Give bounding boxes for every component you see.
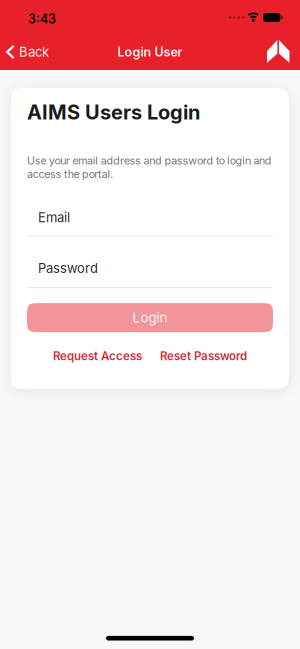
button[interactable]: AIMS Home [266,38,300,61]
staticText: Request Access [53,349,142,363]
staticText: Login User [117,44,182,59]
button[interactable]: Reset Password [160,349,247,363]
button[interactable]: Back [0,42,49,58]
staticText: Use your email address and password to l… [27,154,272,181]
staticText: 3:43 [28,11,56,26]
staticText: Reset Password [160,349,247,363]
staticText: AIMS Users Login [27,100,200,124]
staticText: Back [19,44,49,60]
staticText: Email [38,210,70,225]
button[interactable]: Login [27,303,273,332]
staticText: Login [132,309,167,326]
staticText: Password [38,260,98,276]
button[interactable]: Request Access [53,349,142,363]
